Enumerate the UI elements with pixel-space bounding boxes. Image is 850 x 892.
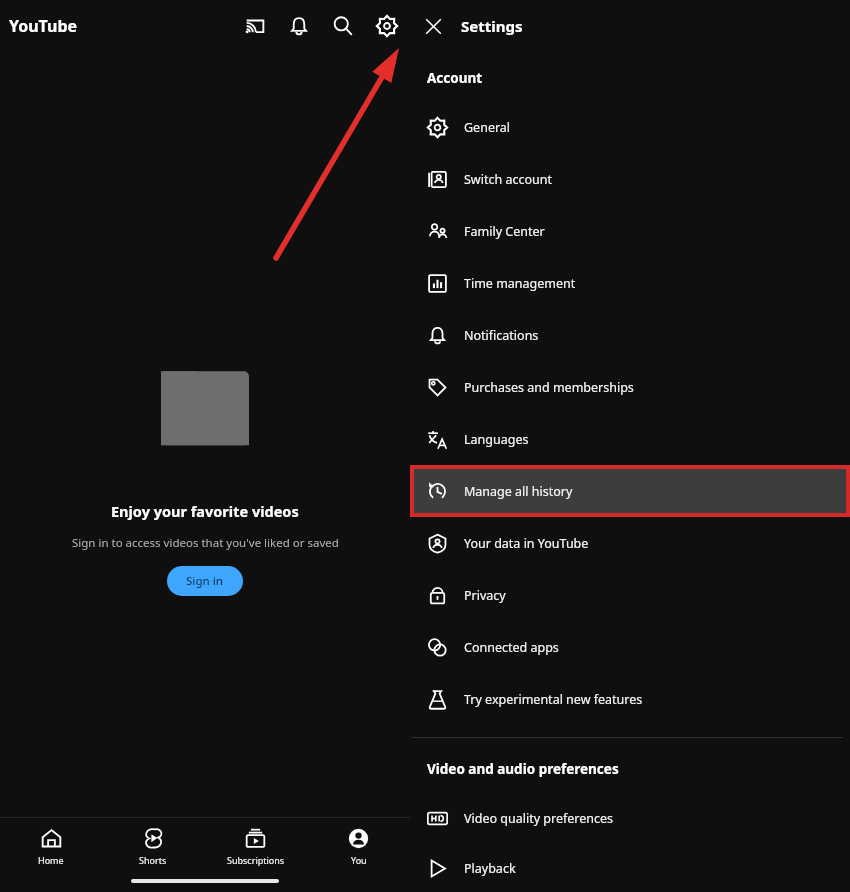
button[interactable]: Connected apps [410, 621, 850, 673]
button[interactable]: Notifications [284, 11, 314, 41]
button[interactable]: Close [418, 11, 448, 41]
staticText: YouTube [9, 15, 78, 37]
staticText: Purchases and memberships [464, 379, 634, 396]
button[interactable]: Search [328, 11, 358, 41]
button[interactable]: Purchases and memberships [410, 361, 850, 413]
button[interactable]: Settings [372, 11, 402, 41]
staticText: Sign in to access videos that you've lik… [72, 535, 339, 551]
button[interactable]: Sign in [167, 566, 243, 596]
button[interactable]: Cast [240, 11, 270, 41]
button[interactable]: Your data in YouTube [410, 517, 850, 569]
staticText: General [464, 119, 511, 136]
staticText: Privacy [464, 587, 506, 604]
staticText: Home [38, 854, 64, 866]
staticText: Connected apps [464, 639, 559, 656]
button[interactable]: Manage all history [414, 469, 846, 513]
button[interactable]: Shorts [102, 818, 204, 874]
button[interactable]: You [307, 818, 410, 874]
button[interactable]: Time management [410, 257, 850, 309]
staticText: Playback [464, 860, 516, 877]
staticText: Manage all history [464, 483, 573, 500]
button[interactable]: Home [0, 818, 102, 874]
button[interactable]: Video quality preferences [410, 792, 850, 844]
staticText: Time management [464, 275, 576, 292]
staticText: Shorts [139, 854, 167, 866]
button[interactable]: Privacy [410, 569, 850, 621]
staticText: Family Center [464, 223, 545, 240]
staticText: Account [427, 69, 483, 87]
button[interactable]: Try experimental new features [410, 673, 850, 725]
staticText: You [351, 854, 367, 866]
staticText: Sign in [186, 573, 224, 589]
staticText: Languages [464, 431, 529, 448]
button[interactable]: Family Center [410, 205, 850, 257]
staticText: Your data in YouTube [464, 535, 589, 552]
staticText: Subscriptions [227, 854, 285, 866]
button[interactable]: Languages [410, 413, 850, 465]
button[interactable]: Playback [410, 844, 850, 892]
staticText: Try experimental new features [464, 691, 643, 708]
staticText: Settings [461, 16, 523, 36]
button[interactable]: Notifications [410, 309, 850, 361]
staticText: Switch account [464, 171, 552, 188]
staticText: Video and audio preferences [427, 760, 619, 778]
button[interactable]: Switch account [410, 153, 850, 205]
staticText: Enjoy your favorite videos [111, 501, 299, 521]
button[interactable]: General [410, 101, 850, 153]
button[interactable]: Subscriptions [204, 818, 307, 874]
staticText: Video quality preferences [464, 810, 614, 827]
staticText: Notifications [464, 327, 539, 344]
